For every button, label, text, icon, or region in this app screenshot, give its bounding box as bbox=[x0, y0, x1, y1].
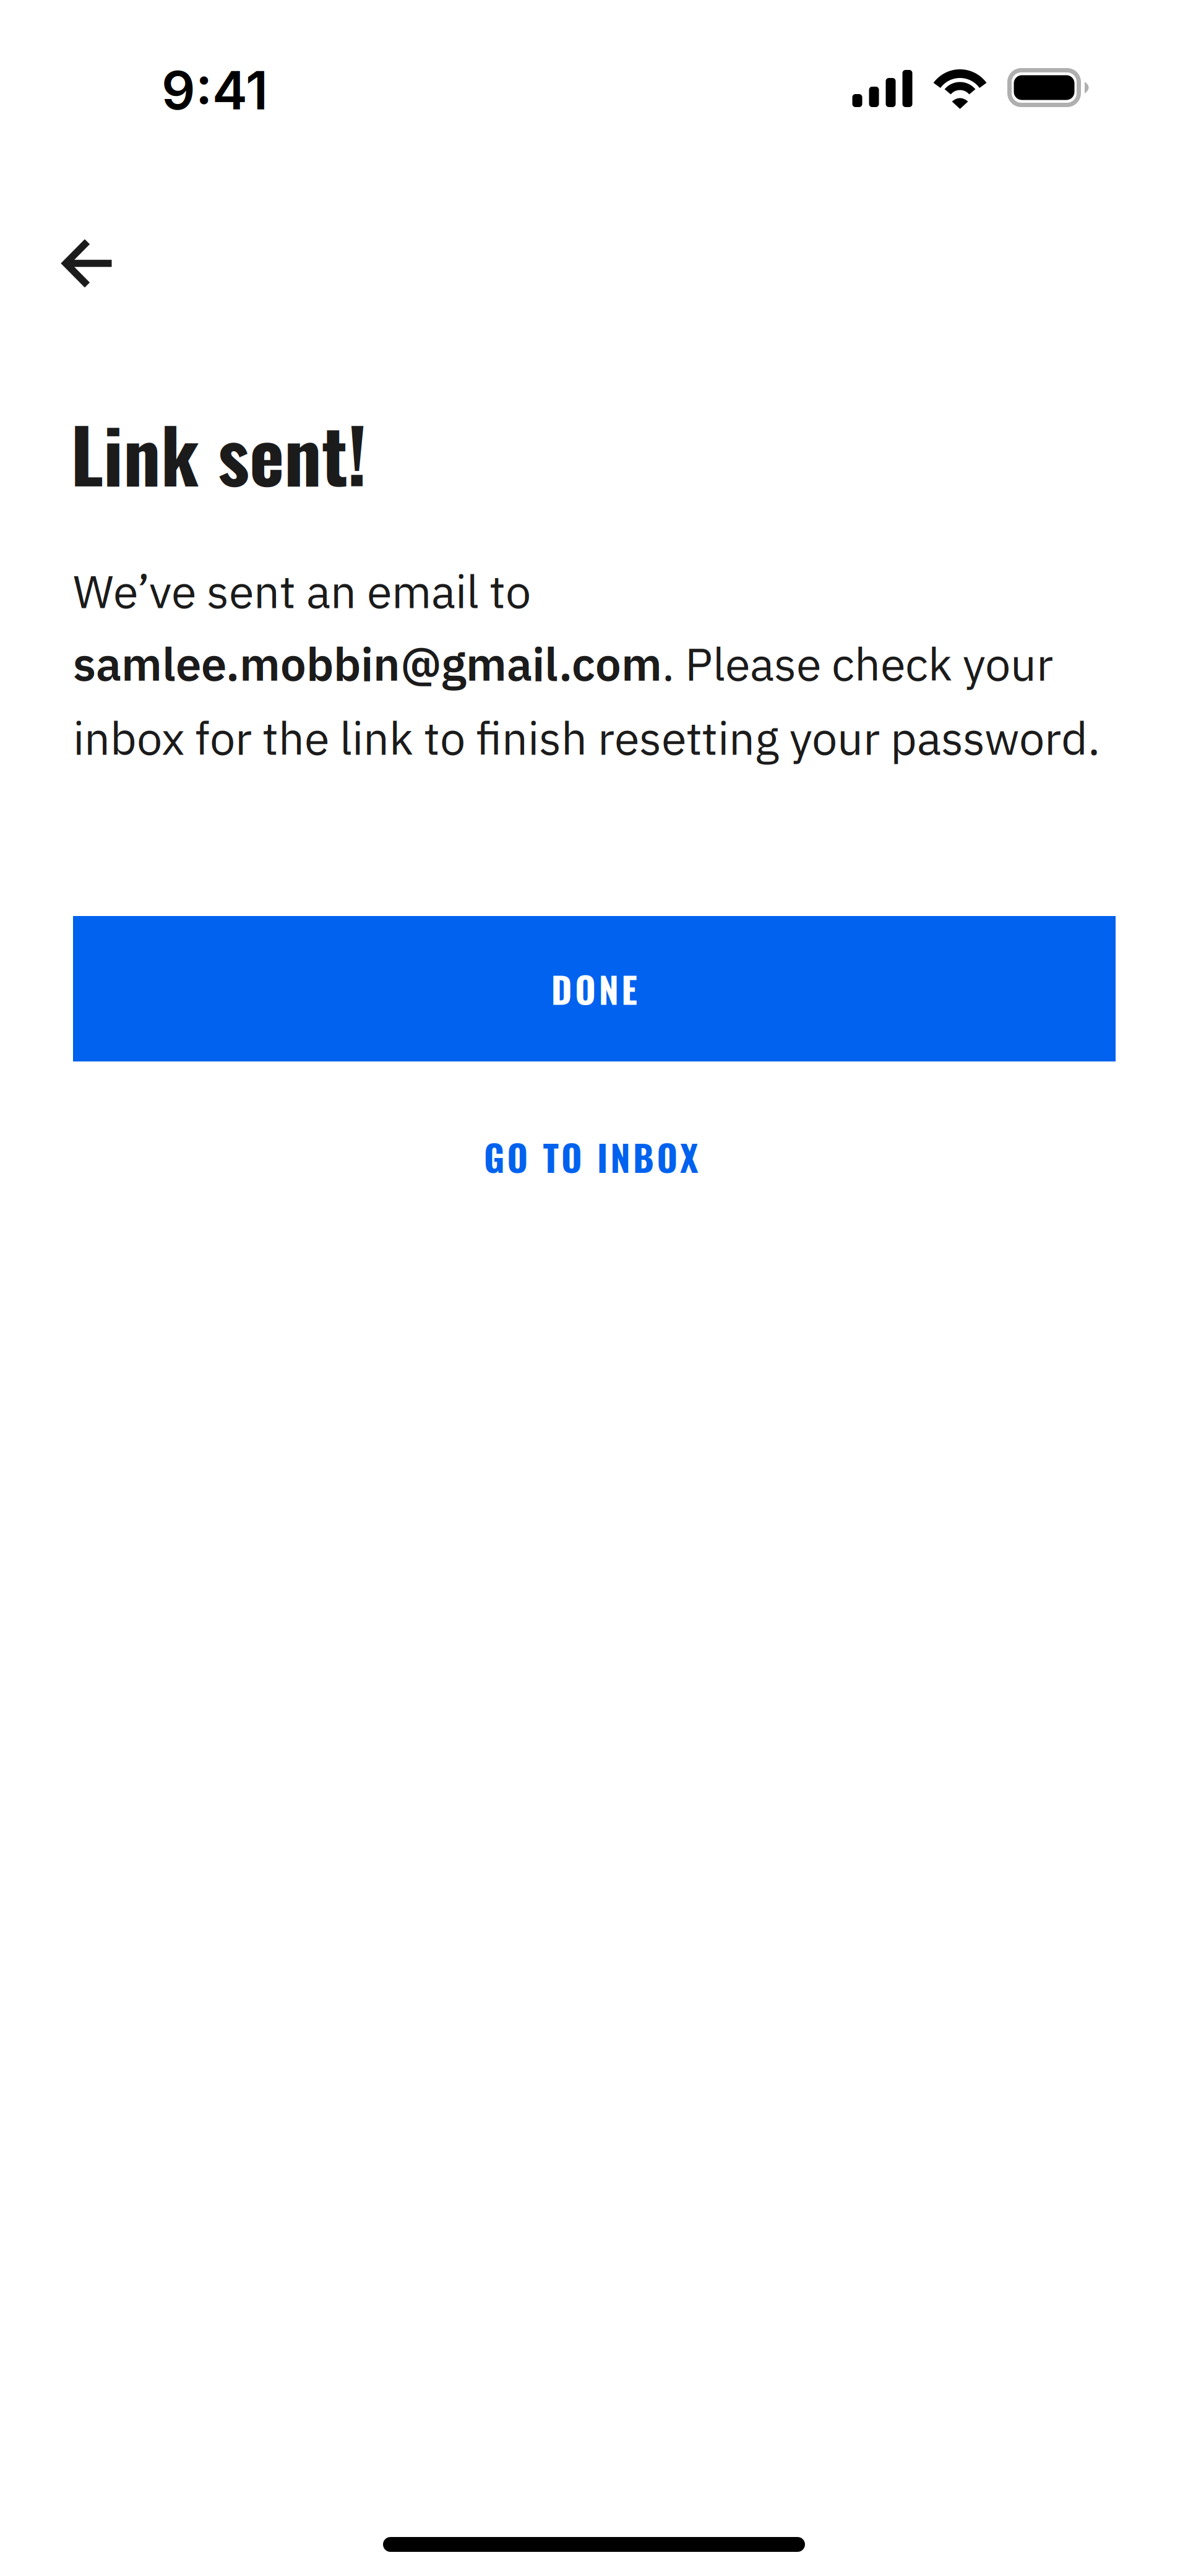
staticText: Link sent! bbox=[71, 398, 367, 508]
button[interactable]: Back bbox=[49, 223, 123, 305]
staticText: DONE bbox=[551, 962, 637, 1015]
button[interactable]: DONE bbox=[73, 916, 1116, 1061]
button[interactable]: GO TO INBOX bbox=[70, 1102, 1113, 1211]
staticText: 9:41 bbox=[161, 58, 268, 122]
staticText: GO TO INBOX bbox=[484, 1130, 699, 1183]
staticText: We’ve sent an email to bbox=[73, 561, 531, 621]
staticText: samlee.mobbin@gmail.com. Please check yo… bbox=[73, 634, 1053, 693]
staticText: inbox for the link to finish resetting y… bbox=[73, 708, 1100, 767]
